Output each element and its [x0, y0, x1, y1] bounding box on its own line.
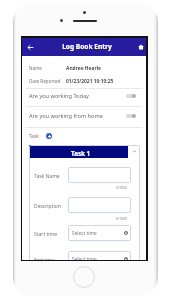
- staticText: End time: [34, 257, 55, 260]
- staticText: Description: [34, 203, 61, 210]
- button[interactable]: Are you working Today: [22, 91, 146, 101]
- staticText: Name: [29, 65, 66, 71]
- staticText: Task: [29, 133, 39, 140]
- staticText: Andree Hearle: [66, 65, 102, 72]
- staticText: Task Name: [34, 173, 60, 180]
- staticText: 0/1000: [116, 185, 127, 190]
- staticText: 01/23/2021 10:10:25: [66, 78, 114, 85]
- button[interactable]: Select time: [68, 225, 131, 241]
- staticText: 0/1000: [116, 216, 127, 221]
- button[interactable]: Collapse task: [128, 145, 140, 158]
- button[interactable]: [68, 197, 131, 213]
- staticText: Task 1: [71, 149, 91, 158]
- staticText: Log Book Entry: [62, 42, 112, 51]
- button[interactable]: [68, 167, 131, 183]
- button[interactable]: Home: [135, 38, 146, 56]
- button[interactable]: Add task: [46, 133, 52, 139]
- button[interactable]: Task 1: [29, 145, 128, 158]
- staticText: Select time: [72, 256, 124, 260]
- staticText: Are you working Today: [29, 92, 126, 100]
- staticText: Date Reported: [29, 78, 66, 84]
- button[interactable]: Select time: [68, 251, 131, 260]
- button[interactable]: Back: [22, 38, 39, 56]
- staticText: Are you working from home: [29, 112, 126, 120]
- staticText: Select time: [72, 230, 124, 237]
- staticText: Start time: [34, 231, 58, 238]
- button[interactable]: Are you working from home: [22, 111, 146, 121]
